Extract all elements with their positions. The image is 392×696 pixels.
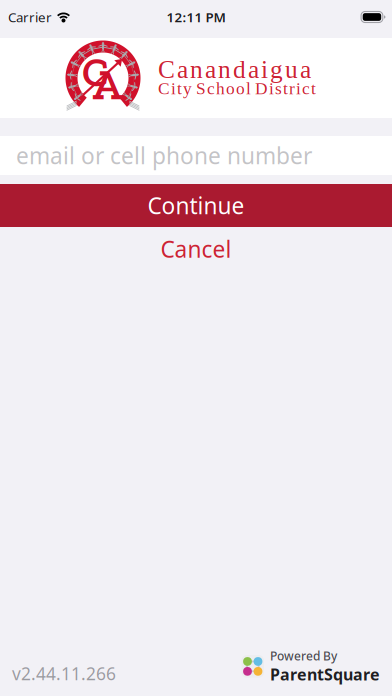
staticText: v2.44.11.266 bbox=[12, 662, 116, 685]
staticText: 12:11 PM bbox=[166, 8, 225, 26]
staticText: Continue bbox=[147, 190, 244, 220]
staticText: Cancel bbox=[160, 234, 231, 264]
staticText: email or cell phone number bbox=[16, 140, 312, 170]
staticText: C bbox=[82, 47, 109, 97]
staticText: Powered By bbox=[270, 648, 337, 664]
staticText: C i t y S c h o o l D i s t r i c t bbox=[158, 79, 316, 98]
button[interactable]: Cancel bbox=[0, 227, 392, 271]
button[interactable]: Continue bbox=[0, 184, 392, 227]
staticText: A bbox=[92, 58, 122, 110]
staticText: C a n a n d a i g u a bbox=[158, 55, 311, 84]
staticText: Carrier bbox=[8, 8, 52, 26]
staticText: ParentSquare bbox=[270, 664, 380, 685]
